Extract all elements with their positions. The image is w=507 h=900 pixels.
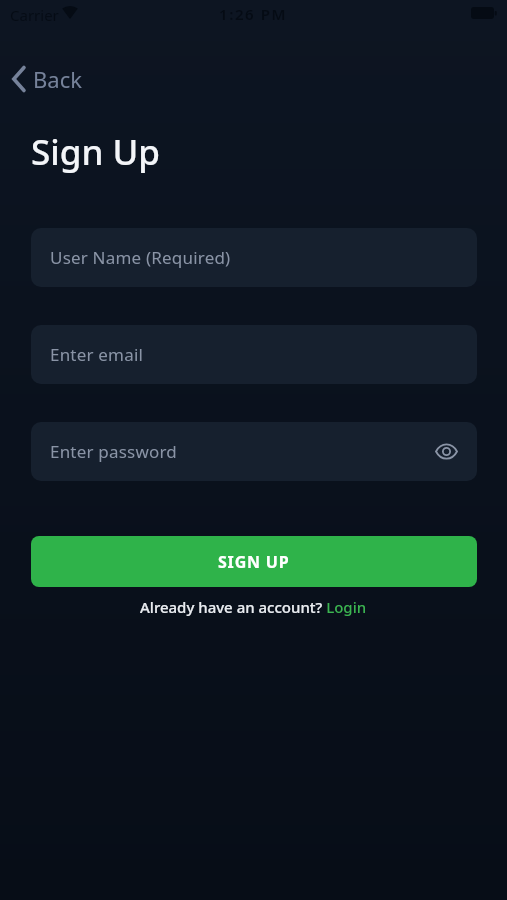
- staticText: User Name (Required): [50, 246, 231, 269]
- staticText: Back: [33, 64, 82, 94]
- staticText: 1:26 PM: [219, 4, 288, 24]
- button[interactable]: Already have an account? Login: [140, 597, 367, 617]
- button[interactable]: User Name (Required): [31, 228, 477, 287]
- button[interactable]: Back: [8, 60, 86, 98]
- button[interactable]: SIGN UP: [31, 536, 477, 587]
- staticText: Carrier: [10, 5, 59, 25]
- button[interactable]: Enter email: [31, 325, 477, 384]
- staticText: SIGN UP: [218, 551, 290, 573]
- staticText: Enter password: [50, 440, 177, 463]
- staticText: Sign Up: [31, 128, 160, 176]
- staticText: Enter email: [50, 343, 144, 366]
- button[interactable]: Enter password: [31, 422, 477, 481]
